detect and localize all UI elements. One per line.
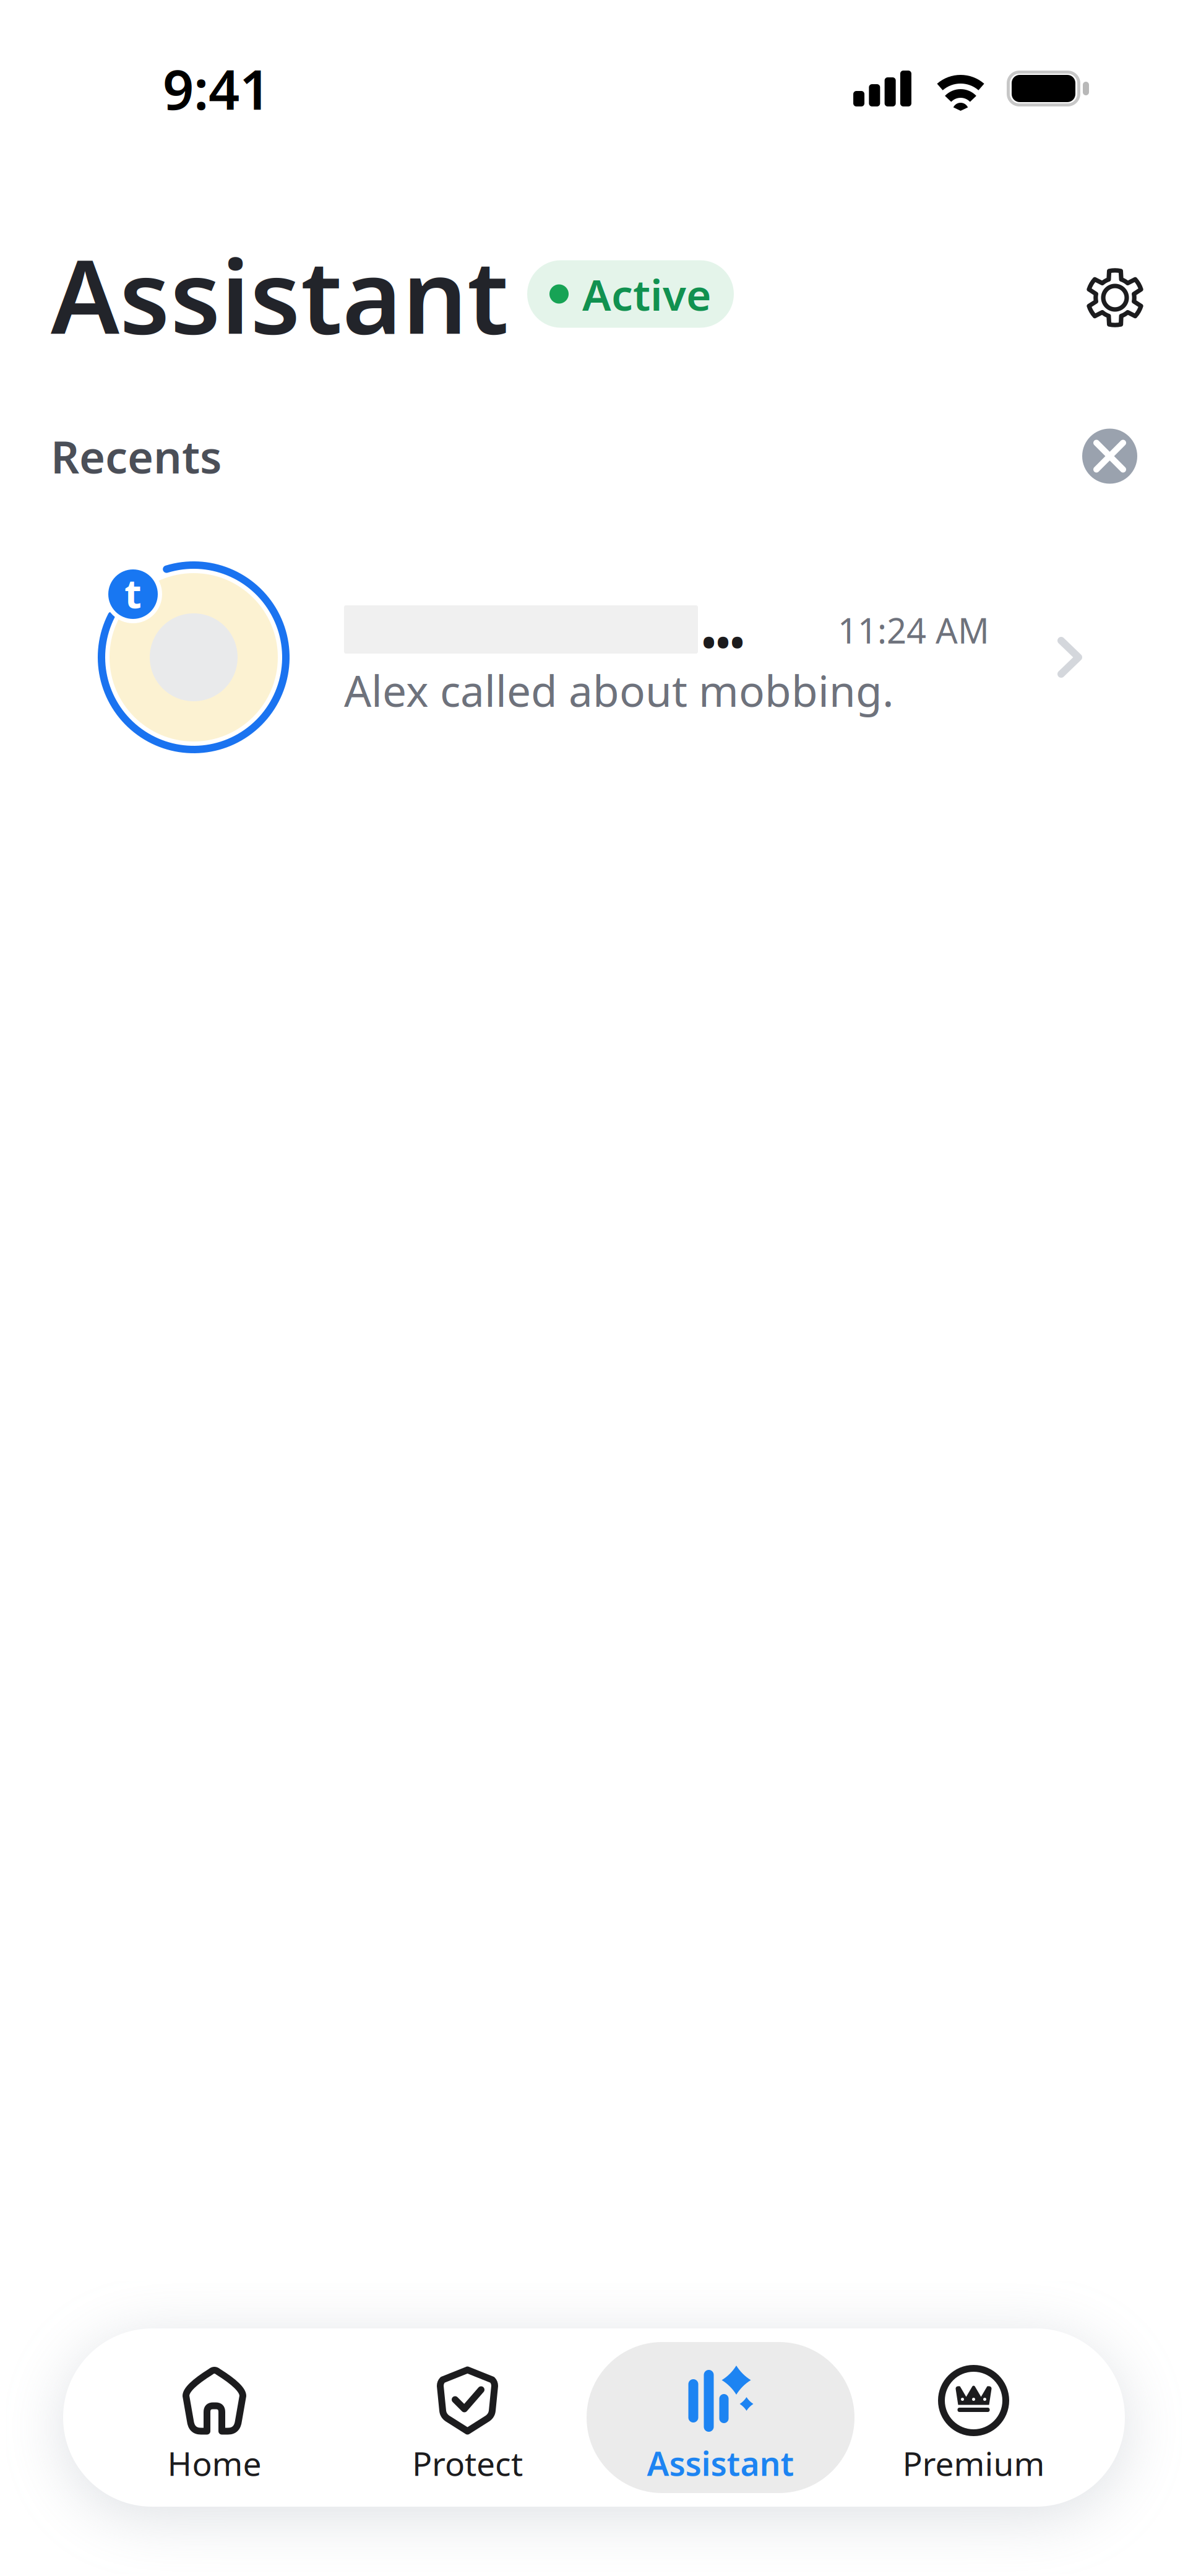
staticText: Active	[582, 266, 712, 323]
staticText: Assistant	[51, 226, 509, 362]
staticText: Assistant	[647, 2441, 794, 2485]
button[interactable]: Home	[88, 2342, 341, 2493]
button[interactable]: t	[0, 561, 1188, 754]
staticText: Protect	[412, 2441, 523, 2485]
button[interactable]: Premium	[847, 2342, 1100, 2493]
staticText: 9:41	[163, 52, 270, 125]
button[interactable]: Settings	[1069, 257, 1137, 331]
staticText: •••	[702, 617, 744, 667]
button[interactable]: Protect	[341, 2342, 594, 2493]
staticText: Home	[167, 2441, 261, 2485]
staticText: 11:24 AM	[838, 607, 989, 653]
button[interactable]: Assistant	[594, 2342, 847, 2493]
staticText: Recents	[51, 427, 222, 486]
button[interactable]: Clear recents	[1082, 429, 1137, 484]
staticText: t	[124, 567, 142, 619]
staticText: Alex called about mobbing.	[344, 662, 894, 719]
staticText: Premium	[902, 2441, 1045, 2485]
